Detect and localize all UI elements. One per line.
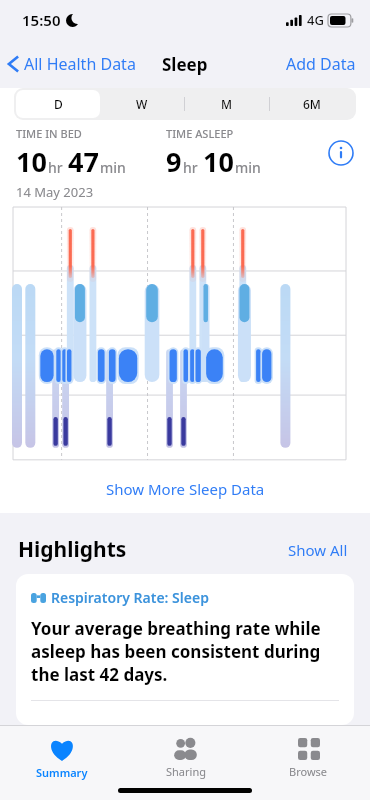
staticText: 15:50	[22, 10, 61, 30]
staticText: M	[221, 96, 233, 112]
staticText: 6M	[303, 96, 321, 112]
button[interactable]: 6M	[269, 90, 354, 118]
staticText: Sharing	[166, 764, 206, 779]
staticText: Add Data	[286, 53, 356, 75]
button[interactable]: W	[100, 90, 184, 118]
staticText: TIME ASLEEP	[166, 126, 234, 141]
staticText: Browse	[289, 764, 328, 779]
staticText: Sleep	[162, 53, 208, 76]
button[interactable]: Browse	[247, 734, 370, 783]
staticText: All Health Data	[24, 53, 136, 75]
staticText: min	[100, 158, 126, 177]
staticText: D	[54, 96, 63, 112]
staticText: 9	[166, 143, 182, 180]
staticText: min	[235, 158, 261, 177]
staticText: Summary	[36, 765, 88, 780]
button[interactable]: D	[16, 90, 100, 118]
staticText: W	[136, 96, 148, 112]
staticText: Respiratory Rate: Sleep	[51, 588, 209, 607]
button[interactable]: Summary	[0, 734, 124, 784]
staticText: 14 May 2023	[16, 183, 94, 201]
button[interactable]: Sharing	[124, 734, 247, 783]
button[interactable]: Show More Sleep Data	[0, 465, 370, 513]
staticText: 4G	[307, 11, 324, 29]
button[interactable]: Information	[328, 140, 354, 166]
staticText: Highlights	[18, 535, 127, 564]
staticText: 47	[68, 143, 99, 180]
button[interactable]: M	[184, 90, 269, 118]
staticText: 10	[203, 143, 234, 180]
staticText: Show More Sleep Data	[106, 479, 265, 499]
staticText: hr	[48, 158, 63, 177]
staticText: Your average breathing rate while asleep…	[31, 617, 339, 686]
staticText: hr	[183, 158, 198, 177]
staticText: Show All	[288, 540, 348, 560]
button[interactable]: All Health Data	[0, 47, 144, 81]
staticText: TIME IN BED	[16, 126, 82, 141]
button[interactable]: Respiratory Rate: Sleep	[16, 574, 354, 725]
button[interactable]: Add Data	[272, 47, 370, 81]
staticText: 10	[16, 143, 47, 180]
button[interactable]: Show All	[284, 536, 352, 564]
